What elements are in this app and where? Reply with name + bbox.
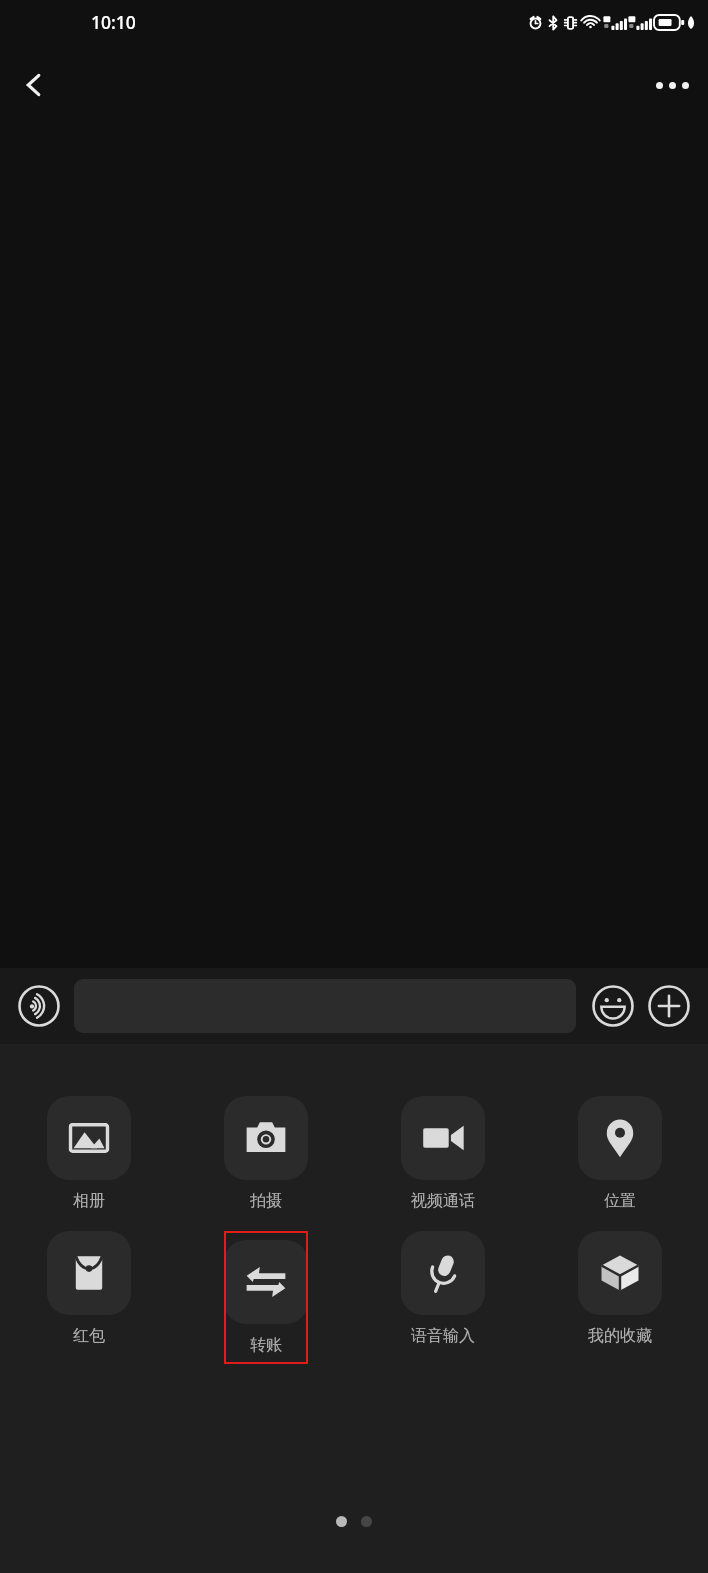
staticText: 位置: [604, 1191, 636, 1211]
button[interactable]: Emoji: [587, 980, 639, 1032]
staticText: 语音输入: [411, 1326, 475, 1346]
button[interactable]: 红包: [47, 1231, 131, 1346]
button[interactable]: 相册: [47, 1096, 131, 1211]
button[interactable]: 位置: [578, 1096, 662, 1211]
button[interactable]: 我的收藏: [578, 1231, 662, 1346]
staticText: 我的收藏: [588, 1326, 652, 1346]
button[interactable]: More: [643, 980, 695, 1032]
button[interactable]: 语音输入: [401, 1231, 485, 1346]
button[interactable]: Back: [8, 59, 60, 111]
staticText: 视频通话: [411, 1191, 475, 1211]
button[interactable]: Voice message: [13, 980, 65, 1032]
staticText: 转账: [250, 1335, 282, 1355]
staticText: 相册: [73, 1191, 105, 1211]
staticText: 红包: [73, 1326, 105, 1346]
staticText: 10:10: [91, 10, 136, 34]
button[interactable]: 拍摄: [224, 1096, 308, 1211]
button[interactable]: 视频通话: [401, 1096, 485, 1211]
button[interactable]: More options: [644, 57, 700, 113]
staticText: 拍摄: [250, 1191, 282, 1211]
button[interactable]: 转账: [224, 1240, 308, 1355]
